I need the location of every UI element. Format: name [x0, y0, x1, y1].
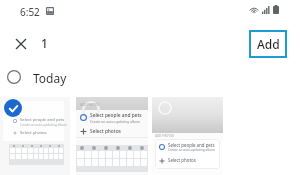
- staticText: Select photos: [168, 157, 196, 163]
- staticText: Add: [257, 36, 280, 52]
- staticText: Create an auto-updating album: [90, 119, 141, 124]
- button[interactable]: Close: [8, 31, 33, 56]
- staticText: 1: [41, 35, 48, 51]
- staticText: ADD PHOTOS: [155, 134, 174, 138]
- button[interactable]: Add: [249, 30, 287, 58]
- staticText: ADD PHOTOS: [80, 103, 99, 107]
- staticText: Select people and pets: [20, 117, 65, 123]
- staticText: Select people and pets: [90, 112, 142, 119]
- staticText: Create an auto-updating album: [20, 123, 68, 127]
- staticText: 6:52: [20, 5, 40, 19]
- button[interactable]: Select all: [4, 67, 24, 87]
- button[interactable]: ADD PHOTOS: [76, 97, 148, 175]
- staticText: Select photos: [20, 130, 47, 136]
- staticText: Select photos: [90, 128, 121, 135]
- staticText: Create an auto-updating album: [168, 148, 216, 152]
- button[interactable]: ADD PHOTOS: [152, 97, 223, 175]
- staticText: Select people and pets: [168, 142, 215, 148]
- staticText: Today: [33, 70, 67, 86]
- button[interactable]: Select people and pets: [0, 97, 70, 175]
